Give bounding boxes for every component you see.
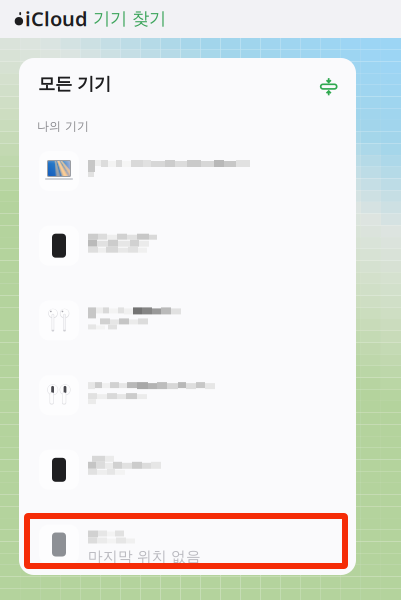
button[interactable]: iCloud 기기 찾기 [13, 6, 166, 32]
button[interactable]: 모두 접기 [315, 73, 343, 101]
button[interactable] [39, 375, 356, 415]
button[interactable] [39, 151, 356, 191]
staticText: 나의 기기 [37, 119, 89, 134]
staticText: iCloud [25, 5, 88, 32]
button[interactable] [39, 450, 356, 490]
staticText: 마지막 위치 없음 [88, 547, 201, 565]
staticText: 기기 찾기 [88, 8, 166, 29]
button[interactable] [39, 226, 356, 266]
button[interactable]: 마지막 위치 없음 [39, 524, 356, 564]
button[interactable] [39, 300, 356, 340]
staticText: 모든 기기 [38, 73, 111, 94]
